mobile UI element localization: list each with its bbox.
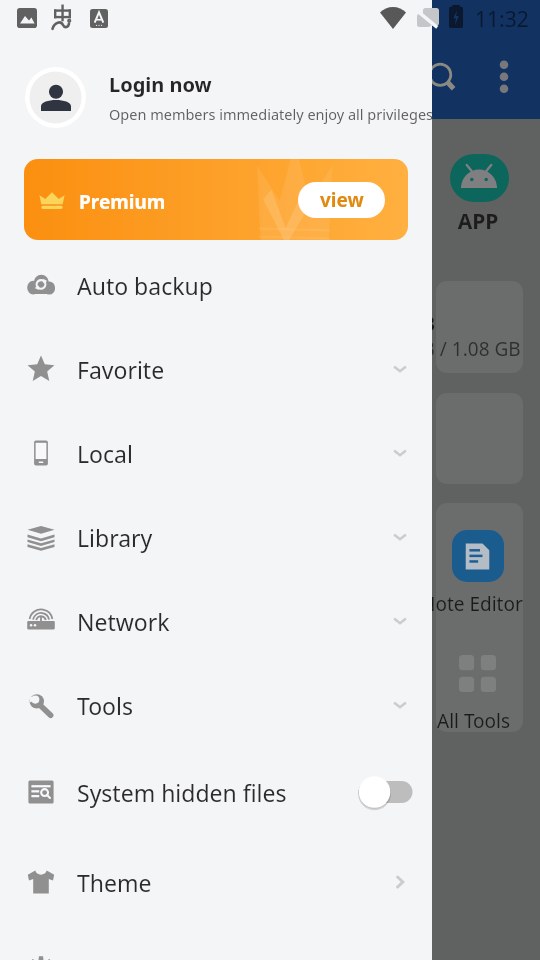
staticText: Network [77,606,170,637]
button[interactable]: Theme [0,840,432,924]
staticText: Premium [79,189,166,215]
button[interactable]: Local [0,411,432,495]
button[interactable]: view [298,182,385,218]
staticText: Local [77,438,133,469]
button[interactable]: System hidden files [0,750,432,834]
button[interactable]: Favorite [0,327,432,411]
button[interactable]: Premium [24,159,408,240]
button[interactable]: Network [0,579,432,663]
staticText: Favorite [77,354,165,385]
staticText: Tools [77,690,133,721]
button[interactable]: More options [488,48,520,104]
button[interactable]: Login now [0,59,432,136]
button[interactable]: System hidden files toggle [358,775,413,809]
button[interactable]: Settings [0,928,432,960]
staticText: 3 [424,311,435,337]
button[interactable]: Auto backup [0,243,432,327]
staticText: Auto backup [77,270,213,301]
staticText: 3 / 1.08 GB [424,336,521,362]
staticText: System hidden files [77,777,287,808]
staticText: Login now [109,71,212,98]
button[interactable]: Search [424,59,458,93]
button[interactable]: All Tools [459,655,496,692]
staticText: view [320,187,364,213]
staticText: 11:32 [475,5,529,34]
staticText: Theme [77,867,152,898]
staticText: Open members immediately enjoy all privi… [109,104,431,124]
button[interactable]: Tools [0,663,432,747]
button[interactable]: Library [0,495,432,579]
button[interactable]: APP [450,154,509,202]
staticText: Library [77,522,153,553]
button[interactable]: Note Editor [452,530,504,582]
staticText: All Tools [437,708,511,734]
staticText: APP [450,207,506,236]
staticText: Note Editor [421,591,523,617]
button[interactable] [436,281,523,373]
